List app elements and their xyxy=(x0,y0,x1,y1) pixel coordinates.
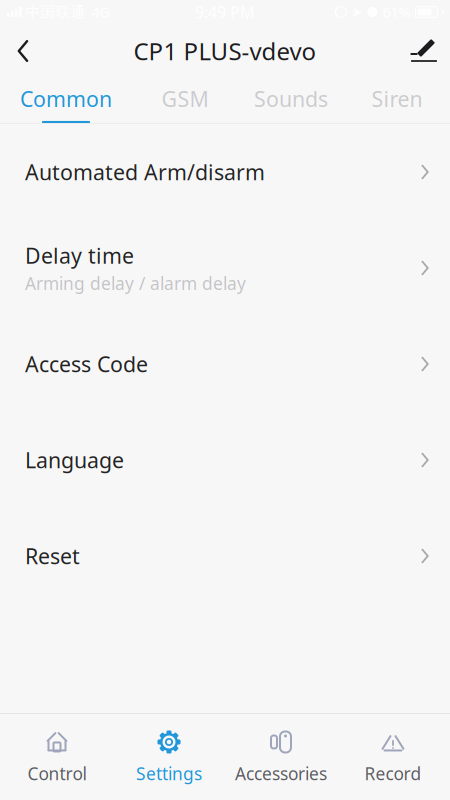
staticText: Arming delay / alarm delay xyxy=(25,272,246,295)
button[interactable]: Language xyxy=(0,412,450,508)
button[interactable]: Delay time xyxy=(0,220,450,316)
button[interactable]: Control xyxy=(1,721,113,793)
staticText: Delay time xyxy=(25,241,134,270)
staticText: Record xyxy=(364,762,421,785)
button[interactable]: Settings xyxy=(113,721,225,793)
staticText: Control xyxy=(27,762,86,785)
staticText: Settings xyxy=(136,762,202,785)
staticText: CP1 PLUS-vdevo xyxy=(133,35,316,67)
button[interactable]: Record xyxy=(337,721,449,793)
button[interactable]: Siren xyxy=(344,78,450,123)
staticText: Common xyxy=(20,85,112,113)
button[interactable]: Sounds xyxy=(238,78,344,123)
staticText: Reset xyxy=(25,542,80,570)
button[interactable]: GSM xyxy=(132,78,238,123)
button[interactable]: Edit xyxy=(398,24,450,78)
button[interactable]: Common xyxy=(0,78,132,123)
button[interactable]: Access Code xyxy=(0,316,450,412)
button[interactable]: Automated Arm/disarm xyxy=(0,124,450,220)
staticText: Accessories xyxy=(235,762,327,785)
staticText: GSM xyxy=(161,85,208,113)
staticText: Sounds xyxy=(254,85,328,113)
staticText: Siren xyxy=(371,85,422,113)
staticText: Language xyxy=(25,446,124,474)
staticText: Automated Arm/disarm xyxy=(25,158,265,186)
button[interactable]: Reset xyxy=(0,508,450,604)
button[interactable]: Accessories xyxy=(225,721,337,793)
button[interactable]: Back xyxy=(0,24,46,78)
staticText: Access Code xyxy=(25,350,148,378)
